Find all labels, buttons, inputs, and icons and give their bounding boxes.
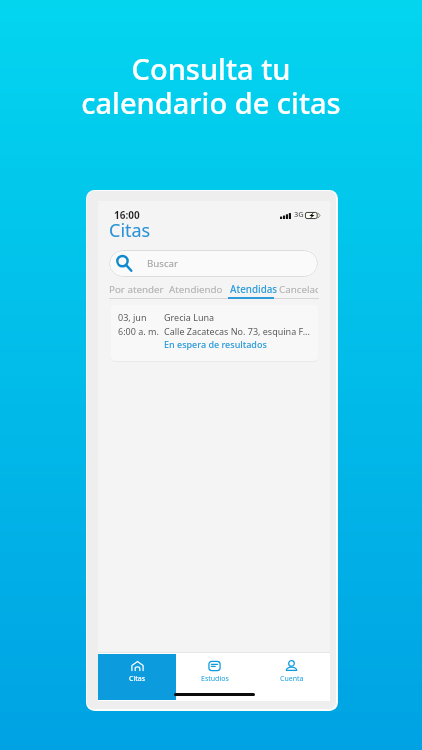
button[interactable]: Citas	[98, 654, 176, 700]
staticText: Buscar	[147, 257, 179, 270]
staticText: Cuenta	[280, 674, 304, 684]
staticText: Calle Zacatecas No. 73, esquina F...	[164, 325, 310, 337]
staticText: Consulta tu	[0, 49, 422, 88]
staticText: 6:00 a. m.	[118, 325, 164, 337]
button[interactable]: Atendidas	[230, 283, 278, 296]
staticText: Grecia Luna	[164, 311, 215, 323]
staticText: 03, jun	[118, 311, 164, 323]
button[interactable]: Atendiendo	[169, 283, 223, 296]
staticText: Estudios	[201, 674, 229, 684]
button[interactable]: 03, jun	[111, 305, 318, 361]
staticText: Citas	[129, 674, 146, 684]
button[interactable]: Por atender	[109, 283, 164, 296]
button[interactable]: Estudios	[176, 654, 253, 700]
staticText: 3G	[294, 209, 304, 219]
button[interactable]: Cuenta	[253, 654, 330, 700]
staticText: 16:00	[114, 208, 140, 222]
staticText: En espera de resultados	[164, 338, 267, 350]
button[interactable]: Buscar	[109, 250, 318, 277]
staticText: calendario de citas	[0, 83, 422, 122]
button[interactable]: Cancelada	[279, 283, 318, 296]
staticText: Citas	[109, 218, 151, 243]
